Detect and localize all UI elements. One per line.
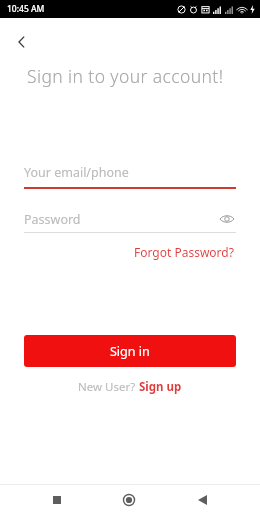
button[interactable]: Back — [4, 24, 40, 60]
staticText: Password — [24, 211, 218, 228]
button[interactable]: Your email/phone — [24, 164, 236, 189]
staticText: Sign in — [110, 343, 150, 360]
button[interactable]: Recents — [42, 485, 72, 515]
button[interactable]: Forgot Password? — [132, 242, 236, 262]
button[interactable]: Home — [114, 485, 144, 515]
button[interactable]: Password — [24, 210, 236, 233]
staticText: 10:45 AM — [7, 3, 45, 15]
button[interactable]: Sign up — [139, 379, 182, 395]
button[interactable]: Sign in — [24, 335, 236, 367]
button[interactable]: Back — [187, 485, 217, 515]
staticText: Your email/phone — [24, 164, 129, 181]
staticText: New User? — [78, 379, 139, 395]
button[interactable]: Show password — [218, 210, 236, 228]
staticText: Sign in to your account! — [27, 64, 240, 88]
